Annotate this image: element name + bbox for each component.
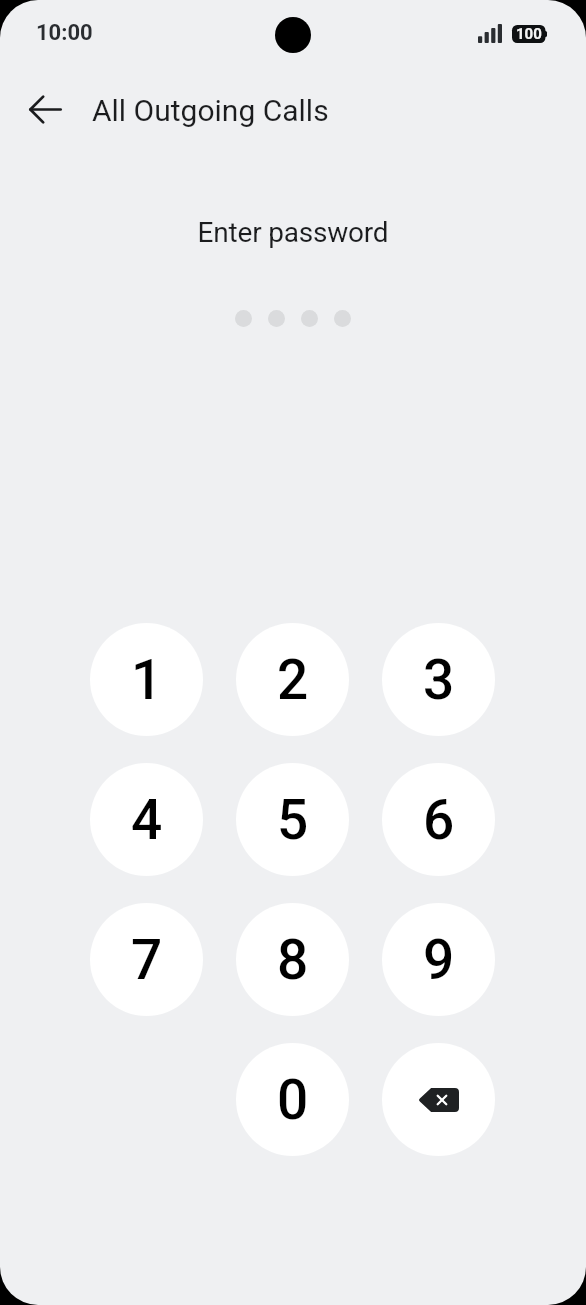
staticText: All Outgoing Calls [92, 93, 329, 128]
other: Mobile signal full [478, 24, 502, 43]
button[interactable]: 6 [382, 763, 495, 876]
staticText: Enter password [0, 216, 586, 249]
button[interactable]: Back [14, 78, 76, 140]
staticText: 6 [423, 788, 455, 852]
staticText: 0 [277, 1068, 309, 1132]
staticText: 3 [423, 648, 455, 712]
staticText: 1 [131, 648, 163, 712]
staticText: 4 [131, 788, 163, 852]
staticText: 2 [277, 648, 309, 712]
button[interactable]: 3 [382, 623, 495, 736]
staticText: 5 [277, 788, 309, 852]
other: Battery 100 percent [512, 25, 547, 43]
button[interactable]: 2 [236, 623, 349, 736]
button[interactable]: 0 [236, 1043, 349, 1156]
button[interactable]: 7 [90, 903, 203, 1016]
staticText: 10:00 [36, 20, 93, 46]
button[interactable]: 1 [90, 623, 203, 736]
button[interactable]: Backspace [382, 1043, 495, 1156]
button[interactable]: 9 [382, 903, 495, 1016]
staticText: 100 [516, 25, 542, 43]
staticText: 8 [277, 928, 309, 992]
button[interactable]: 8 [236, 903, 349, 1016]
button[interactable]: 5 [236, 763, 349, 876]
staticText: 9 [423, 928, 455, 992]
button[interactable]: 4 [90, 763, 203, 876]
staticText: 7 [131, 928, 163, 992]
